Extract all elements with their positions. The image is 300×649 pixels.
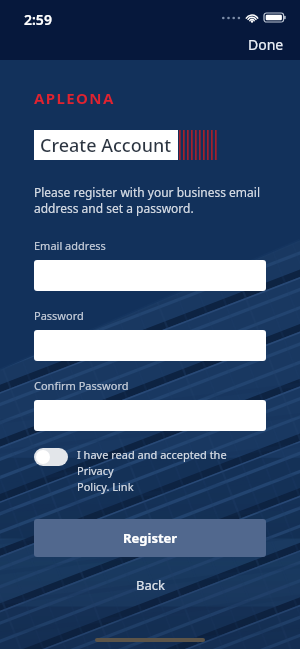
staticText: I have read and accepted the Privacy Pol… — [77, 447, 266, 494]
staticText: Password — [34, 308, 84, 323]
staticText: Done — [248, 35, 284, 54]
button[interactable]: Confirm Password — [34, 400, 266, 431]
button[interactable]: Back — [34, 571, 266, 599]
button[interactable]: Done — [232, 29, 300, 60]
staticText: Register — [123, 529, 178, 547]
staticText: Create Account — [40, 133, 172, 158]
button[interactable]: Email address — [34, 260, 266, 291]
staticText: Back — [136, 576, 165, 594]
button[interactable]: Password — [34, 330, 266, 361]
staticText: 2:59 — [24, 10, 52, 29]
staticText: Confirm Password — [34, 378, 129, 393]
staticText: Email address — [34, 238, 106, 253]
button[interactable]: Register — [34, 519, 266, 557]
staticText: APLEONA — [34, 88, 115, 108]
button[interactable]: I have read and accepted the Privacy Pol… — [34, 447, 266, 494]
staticText: Please register with your business email… — [34, 184, 260, 217]
